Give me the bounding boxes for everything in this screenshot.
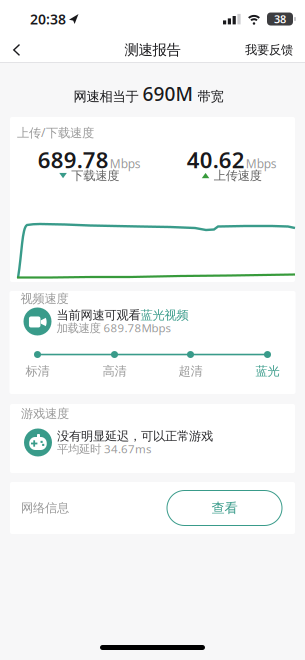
- staticText: 40.62: [187, 145, 245, 175]
- staticText: 带宽: [197, 88, 223, 105]
- staticText: 蓝光视频: [140, 307, 188, 323]
- staticText: 查看: [211, 500, 237, 516]
- staticText: 加载速度 689.78Mbps: [56, 320, 170, 335]
- staticText: 标清: [25, 363, 49, 379]
- staticText: 高清: [102, 363, 126, 379]
- button[interactable]: Back: [0, 39, 20, 61]
- staticText: 我要反馈: [245, 42, 293, 58]
- staticText: 689.78: [38, 145, 109, 175]
- staticText: Mbps: [110, 155, 141, 172]
- staticText: 20:38: [30, 9, 66, 29]
- button[interactable]: 我要反馈: [245, 38, 305, 62]
- staticText: 游戏速度: [21, 406, 69, 421]
- staticText: 690M: [142, 80, 193, 106]
- staticText: 上传/下载速度: [17, 124, 94, 141]
- staticText: 测速报告: [124, 41, 180, 59]
- staticText: 蓝光: [255, 363, 279, 379]
- staticText: 下载速度: [71, 168, 119, 183]
- staticText: 上传速度: [214, 168, 262, 183]
- staticText: Mbps: [246, 155, 277, 172]
- staticText: 网速相当于: [73, 88, 138, 105]
- staticText: 视频速度: [20, 291, 68, 306]
- staticText: 没有明显延迟，可以正常游戏: [57, 428, 213, 444]
- staticText: 网络信息: [21, 500, 69, 516]
- staticText: 平均延时 34.67ms: [57, 441, 151, 456]
- staticText: 超清: [178, 363, 202, 379]
- button[interactable]: 查看: [167, 490, 282, 525]
- staticText: 当前网速可观看: [56, 307, 140, 323]
- staticText: 38: [274, 12, 286, 26]
